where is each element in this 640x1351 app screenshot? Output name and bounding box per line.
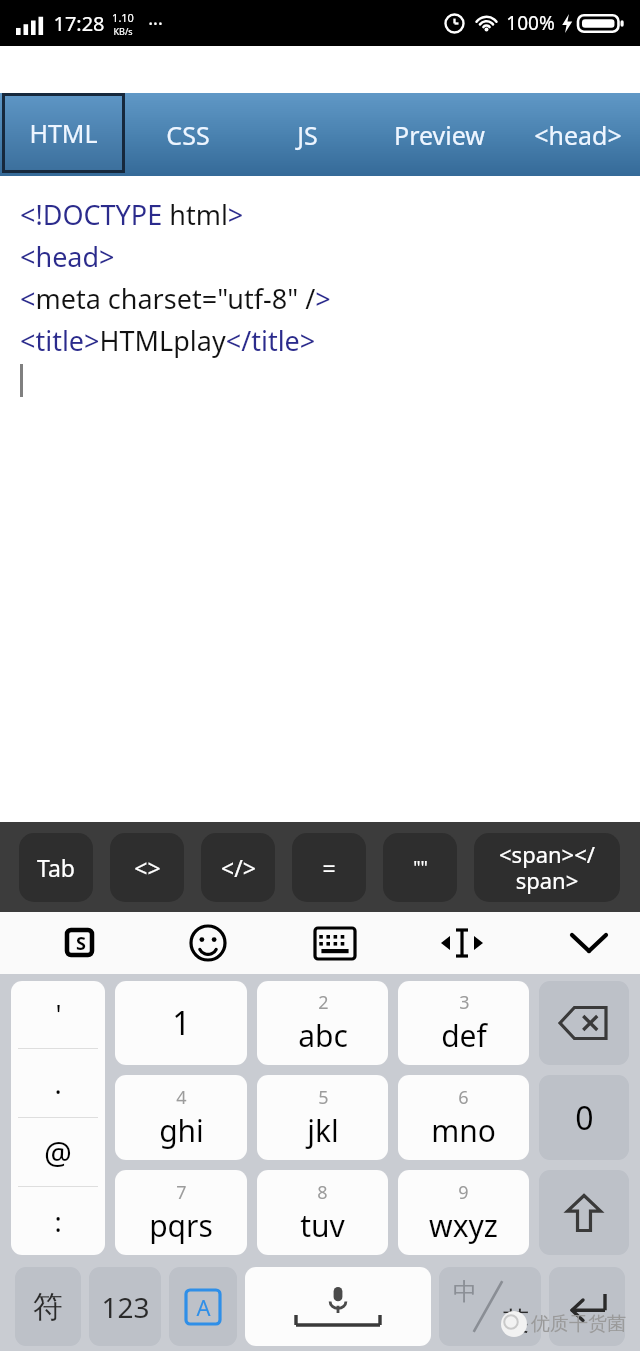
staticText: 17:28: [53, 10, 105, 37]
staticText: <title>HTMLplay</title>: [20, 322, 316, 359]
staticText: pqrs: [149, 1205, 213, 1246]
button[interactable]: <head>: [515, 93, 640, 176]
staticText: 英: [503, 1305, 529, 1338]
staticText: <!DOCTYPE html>: [20, 196, 244, 233]
button[interactable]: <span></ span>: [474, 833, 620, 902]
staticText: 100%: [506, 10, 555, 36]
staticText: CSS: [166, 118, 210, 152]
staticText: KB/s: [113, 25, 133, 37]
button[interactable]: 2: [257, 981, 388, 1065]
staticText: "": [413, 855, 428, 880]
other: Enter: [566, 1291, 608, 1323]
staticText: 2: [318, 990, 329, 1015]
staticText: mno: [431, 1110, 496, 1151]
staticText: <head>: [20, 238, 115, 275]
staticText: wxyz: [429, 1205, 498, 1246]
staticText: Preview: [394, 118, 485, 152]
button[interactable]: 1: [115, 981, 247, 1065]
button[interactable]: 7: [115, 1170, 247, 1255]
button[interactable]: 5: [257, 1075, 388, 1160]
staticText: =: [322, 852, 336, 883]
staticText: 3: [459, 990, 470, 1015]
other: Backspace: [560, 1006, 608, 1040]
staticText: Tab: [37, 852, 75, 883]
button[interactable]: .: [11, 1049, 105, 1117]
staticText: JS: [297, 118, 318, 152]
button[interactable]: </>: [201, 833, 275, 902]
button[interactable]: CSS: [125, 93, 251, 176]
button[interactable]: Shift: [539, 1170, 629, 1255]
staticText: .: [54, 1065, 62, 1102]
button[interactable]: Sogou input: [55, 917, 107, 969]
staticText: <span></ span>: [499, 839, 595, 896]
staticText: <head>: [534, 118, 622, 152]
staticText: ghi: [159, 1110, 204, 1151]
staticText: :: [54, 1203, 62, 1240]
staticText: 1.10: [112, 10, 134, 25]
button[interactable]: :: [11, 1187, 105, 1255]
button[interactable]: Emoji: [182, 917, 234, 969]
staticText: @: [44, 1131, 72, 1173]
button[interactable]: 123: [89, 1267, 161, 1346]
button[interactable]: Preview: [363, 93, 515, 176]
button[interactable]: @: [11, 1118, 105, 1186]
button[interactable]: [245, 1267, 431, 1346]
button[interactable]: Backspace: [539, 981, 629, 1065]
staticText: 9: [458, 1180, 469, 1205]
staticText: 5: [318, 1085, 329, 1110]
staticText: HTML: [29, 116, 98, 150]
staticText: 符: [33, 1288, 63, 1326]
staticText: abc: [298, 1015, 348, 1056]
button[interactable]: JS: [251, 93, 363, 176]
button[interactable]: Move cursor: [436, 917, 488, 969]
button[interactable]: 0: [539, 1075, 629, 1160]
button[interactable]: "": [383, 833, 457, 902]
staticText: <>: [134, 852, 161, 883]
button[interactable]: 4: [115, 1075, 247, 1160]
staticText: A: [196, 1292, 211, 1322]
staticText: <meta charset="utf-8" />: [20, 280, 331, 317]
staticText: jkl: [307, 1110, 339, 1151]
button[interactable]: 中: [439, 1267, 541, 1346]
staticText: def: [441, 1015, 487, 1056]
button[interactable]: 符: [15, 1267, 81, 1346]
staticText: S: [76, 931, 86, 956]
staticText: 1: [172, 1001, 191, 1045]
staticText: ': [55, 996, 62, 1033]
button[interactable]: 3: [398, 981, 529, 1065]
staticText: 0: [575, 1096, 594, 1140]
button[interactable]: Enter: [549, 1267, 625, 1346]
button[interactable]: HTML: [5, 96, 122, 170]
button[interactable]: Keyboard layout: [309, 917, 361, 969]
staticText: 123: [101, 1288, 150, 1326]
staticText: 中: [453, 1277, 477, 1307]
staticText: tuv: [300, 1205, 345, 1246]
button[interactable]: 8: [257, 1170, 388, 1255]
button[interactable]: ': [11, 981, 105, 1048]
staticText: </>: [221, 852, 256, 883]
button[interactable]: <>: [110, 833, 184, 902]
button[interactable]: 6: [398, 1075, 529, 1160]
staticText: ···: [148, 11, 163, 36]
button[interactable]: A: [169, 1267, 237, 1346]
button[interactable]: 9: [398, 1170, 529, 1255]
button[interactable]: =: [292, 833, 366, 902]
staticText: 8: [317, 1180, 328, 1205]
staticText: 6: [458, 1085, 469, 1110]
button[interactable]: Tab: [19, 833, 93, 902]
other: Shift: [566, 1194, 602, 1232]
staticText: 7: [176, 1180, 187, 1205]
button[interactable]: Hide keyboard: [563, 917, 615, 969]
staticText: 4: [176, 1085, 187, 1110]
staticText: 优质干货菌: [531, 1312, 626, 1336]
